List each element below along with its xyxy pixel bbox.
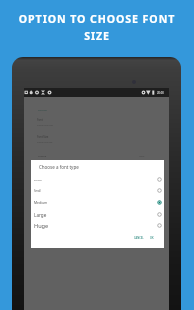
- button[interactable]: Huge: [31, 220, 164, 231]
- staticText: Large: [34, 212, 47, 218]
- staticText: Huge: [34, 222, 49, 230]
- staticText: Font: [37, 118, 43, 122]
- staticText: Settings: [38, 109, 47, 112]
- staticText: OPTION TO CHOOSE FONT SIZE: [0, 12, 194, 44]
- staticText: Theme: [38, 154, 47, 157]
- staticText: 20:00: [157, 91, 164, 95]
- staticText: Choose a font size: [37, 141, 53, 143]
- button[interactable]: OK: [150, 236, 154, 239]
- staticText: ADD: [139, 154, 145, 157]
- button[interactable]: Small: [31, 185, 164, 196]
- staticText: Font Size: [37, 135, 49, 139]
- button[interactable]: Extra Small: [31, 174, 164, 185]
- staticText: Medium: [34, 200, 48, 205]
- staticText: Choose a font type: [39, 164, 79, 170]
- staticText: Small: [34, 189, 41, 193]
- staticText: Extra Small: [34, 179, 42, 181]
- button[interactable]: CANCEL: [134, 236, 144, 239]
- staticText: Choose a font type: [37, 124, 53, 126]
- button[interactable]: Large: [31, 209, 164, 220]
- button[interactable]: Medium: [31, 197, 164, 208]
